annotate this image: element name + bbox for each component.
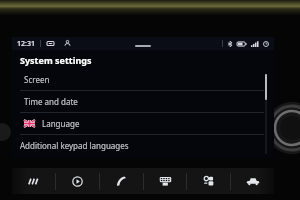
staticText: System settings [20, 54, 92, 66]
button[interactable]: Car [235, 168, 271, 194]
button[interactable]: Additional keypad languages [12, 135, 274, 156]
button[interactable]: Phone [103, 168, 139, 194]
button[interactable]: Media [46, 39, 55, 48]
staticText: Additional keypad languages [20, 140, 129, 151]
button[interactable]: Media [59, 168, 95, 194]
staticText: Screen [24, 74, 50, 85]
button[interactable]: Drag handle [135, 45, 151, 47]
staticText: Time and date [24, 96, 78, 107]
button[interactable]: Time and date [12, 91, 274, 112]
staticText: 12:31 [17, 39, 35, 49]
button[interactable]: Screen [12, 69, 274, 90]
button[interactable]: Profile [63, 39, 72, 48]
staticText: Language [42, 118, 80, 129]
button[interactable]: Menu [15, 168, 51, 194]
button[interactable]: Radio [147, 168, 183, 194]
button[interactable]: Language [12, 113, 274, 134]
button[interactable]: Apps [191, 168, 227, 194]
